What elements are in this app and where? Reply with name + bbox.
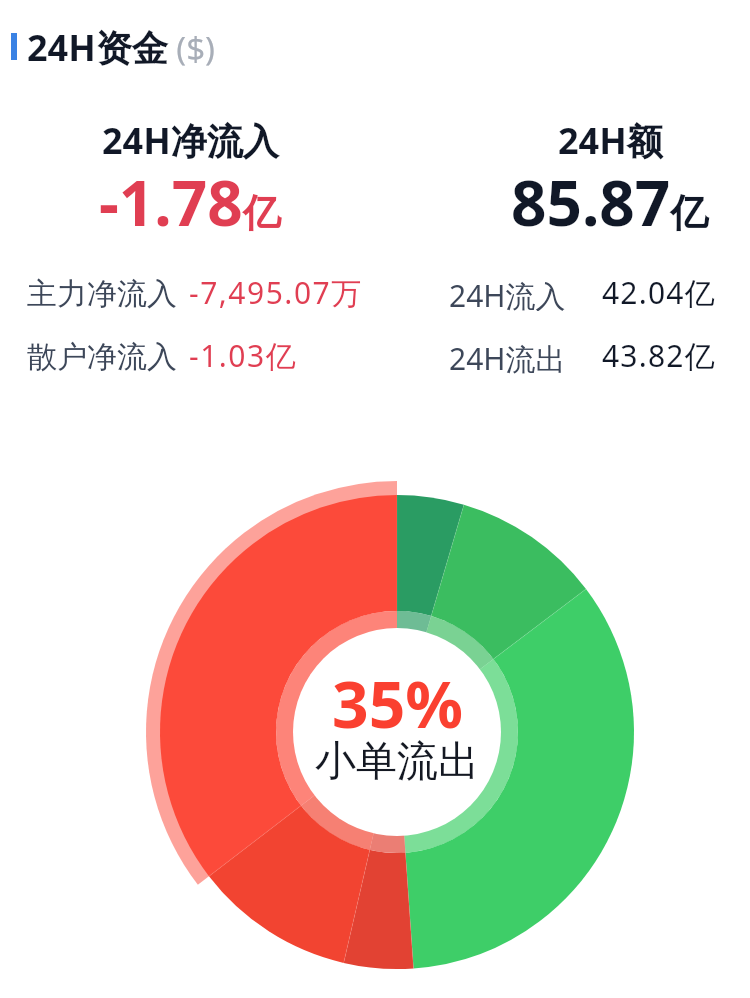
staticText: 小单流出 [315,736,479,788]
staticText: 43.82亿 [602,335,716,371]
staticText: 24H资金 ($) [27,23,215,69]
staticText: 24H流出 [449,338,566,374]
staticText: 散户净流入 [27,338,177,374]
staticText: 35% [332,660,463,747]
button[interactable]: 24H额 [450,116,750,249]
button[interactable]: 24H流出 [449,338,750,374]
button[interactable]: 24H净流入 [30,116,350,249]
button[interactable]: 24H流入 [449,275,750,311]
button[interactable]: 散户净流入 [0,338,449,374]
button[interactable]: 24H资金 ($) [0,23,215,69]
staticText: -1.78亿 [99,160,281,244]
staticText: 24H净流入 [102,116,279,165]
staticText: 85.87亿 [511,160,709,244]
staticText: 24H额 [558,116,663,165]
staticText: 24H流入 [449,275,566,311]
staticText: -7,495.07万 [189,272,363,308]
staticText: 主力净流入 [27,275,177,311]
staticText: -1.03亿 [189,335,298,371]
button[interactable]: 主力净流入 [0,275,449,311]
staticText: 42.04亿 [602,272,716,308]
button[interactable]: 35% [247,660,547,799]
